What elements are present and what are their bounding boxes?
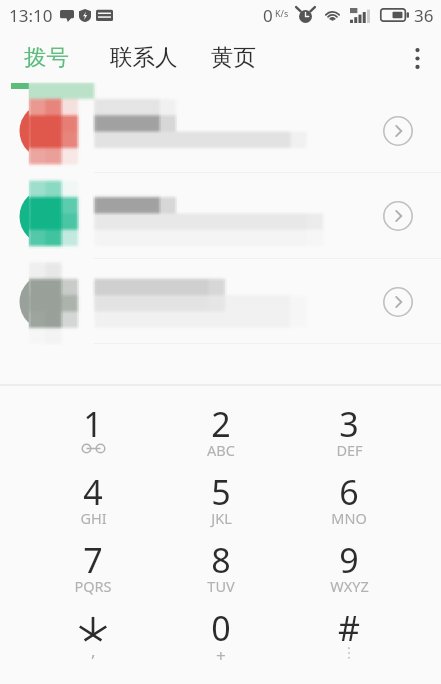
button[interactable]: Call details (372, 105, 424, 157)
staticText: K/s (275, 7, 289, 19)
staticText: DEF (336, 440, 363, 460)
staticText: 9 (339, 537, 359, 583)
staticText: 3 (339, 401, 359, 447)
staticText: , (91, 639, 96, 662)
staticText: 0 (211, 605, 231, 651)
staticText: PQRS (74, 576, 112, 596)
button[interactable] (0, 259, 441, 344)
button[interactable]: Call details (372, 276, 424, 328)
button[interactable]: 拨号 (9, 37, 84, 77)
staticText: # (338, 605, 360, 651)
staticText: MNO (331, 508, 367, 528)
button[interactable]: 4 (29, 456, 157, 524)
button[interactable]: 3 (285, 388, 413, 456)
button[interactable]: , (29, 592, 157, 660)
button[interactable]: 6 (285, 456, 413, 524)
button[interactable]: Call details (372, 190, 424, 242)
staticText: 黄页 (211, 43, 256, 71)
staticText: 7 (83, 537, 103, 583)
staticText: 5 (211, 469, 231, 515)
button[interactable]: 7 (29, 524, 157, 592)
staticText: 联系人 (110, 43, 178, 71)
staticText: 2 (211, 401, 231, 447)
staticText: GHI (80, 508, 107, 528)
button[interactable]: 0 (157, 592, 285, 660)
staticText: 1 (83, 401, 103, 447)
staticText: TUV (207, 576, 235, 596)
button[interactable]: 2 (157, 388, 285, 456)
staticText: 6 (339, 469, 359, 515)
staticText: JKL (211, 508, 232, 528)
button[interactable]: 联系人 (95, 37, 193, 77)
button[interactable] (0, 88, 441, 173)
button[interactable]: 5 (157, 456, 285, 524)
staticText: ABC (207, 440, 235, 460)
staticText: + (216, 644, 226, 667)
staticText: 8 (211, 537, 231, 583)
staticText: 4 (83, 469, 103, 515)
button[interactable]: 9 (285, 524, 413, 592)
staticText: 13:10 (9, 4, 53, 27)
staticText: 拨号 (24, 43, 69, 71)
button[interactable]: 1 (29, 388, 157, 456)
button[interactable]: # (285, 592, 413, 660)
button[interactable]: 黄页 (196, 37, 271, 77)
button[interactable] (0, 174, 441, 259)
button[interactable]: 8 (157, 524, 285, 592)
staticText: 0 (263, 4, 273, 27)
button[interactable]: More options (393, 34, 441, 82)
staticText: WXYZ (330, 576, 369, 596)
staticText: 36 (414, 4, 434, 27)
